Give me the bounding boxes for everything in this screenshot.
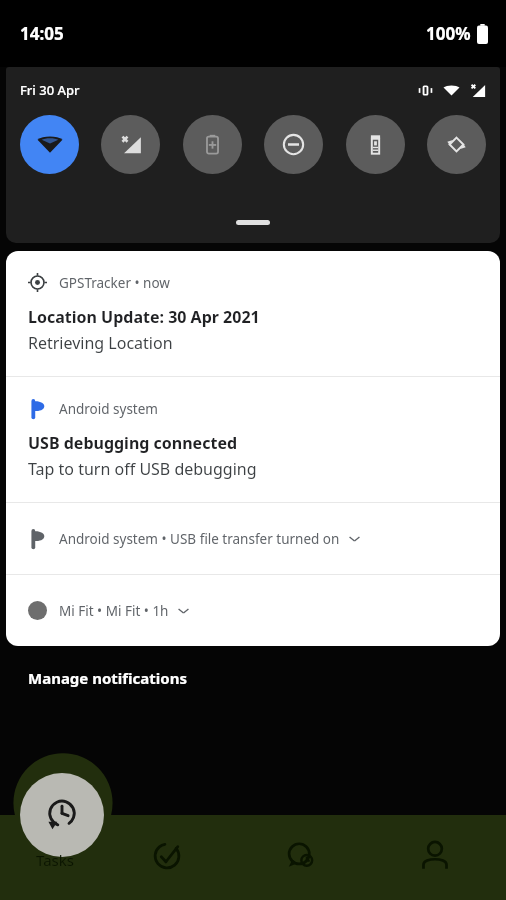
- button[interactable]: Flashlight: [346, 115, 405, 174]
- button[interactable]: Profile: [407, 828, 463, 884]
- button[interactable]: Mobile data: [101, 115, 160, 174]
- staticText: Android system • USB file transfer turne…: [59, 530, 340, 548]
- staticText: Retrieving Location: [28, 332, 173, 354]
- staticText: Tasks: [36, 850, 74, 870]
- button[interactable]: Manage notifications: [0, 664, 215, 692]
- other: Expand: [177, 604, 190, 617]
- button[interactable]: Tasks list: [139, 828, 195, 884]
- button[interactable]: Battery saver: [183, 115, 242, 174]
- button[interactable]: Android system • USB file transfer turne…: [6, 503, 500, 574]
- staticText: 14:05: [20, 22, 64, 45]
- other: Expand: [348, 532, 361, 545]
- button[interactable]: Chat: [273, 828, 329, 884]
- staticText: Tap to turn off USB debugging: [28, 458, 257, 480]
- button[interactable]: GPSTracker • now: [6, 251, 500, 376]
- staticText: GPSTracker • now: [59, 274, 170, 292]
- staticText: Android system: [59, 400, 158, 418]
- button[interactable]: Mi Fit • Mi Fit • 1h: [6, 575, 500, 646]
- button[interactable]: Do not disturb: [264, 115, 323, 174]
- button[interactable]: Wi-Fi: [20, 115, 79, 174]
- staticText: Fri 30 Apr: [20, 81, 80, 99]
- staticText: Mi Fit • Mi Fit • 1h: [59, 602, 169, 620]
- button[interactable]: History: [20, 773, 104, 857]
- staticText: USB debugging connected: [28, 432, 238, 454]
- button[interactable]: Android system: [6, 377, 500, 502]
- staticText: 100%: [426, 22, 471, 45]
- button[interactable]: Auto rotate: [427, 115, 486, 174]
- staticText: Location Update: 30 Apr 2021: [28, 306, 260, 328]
